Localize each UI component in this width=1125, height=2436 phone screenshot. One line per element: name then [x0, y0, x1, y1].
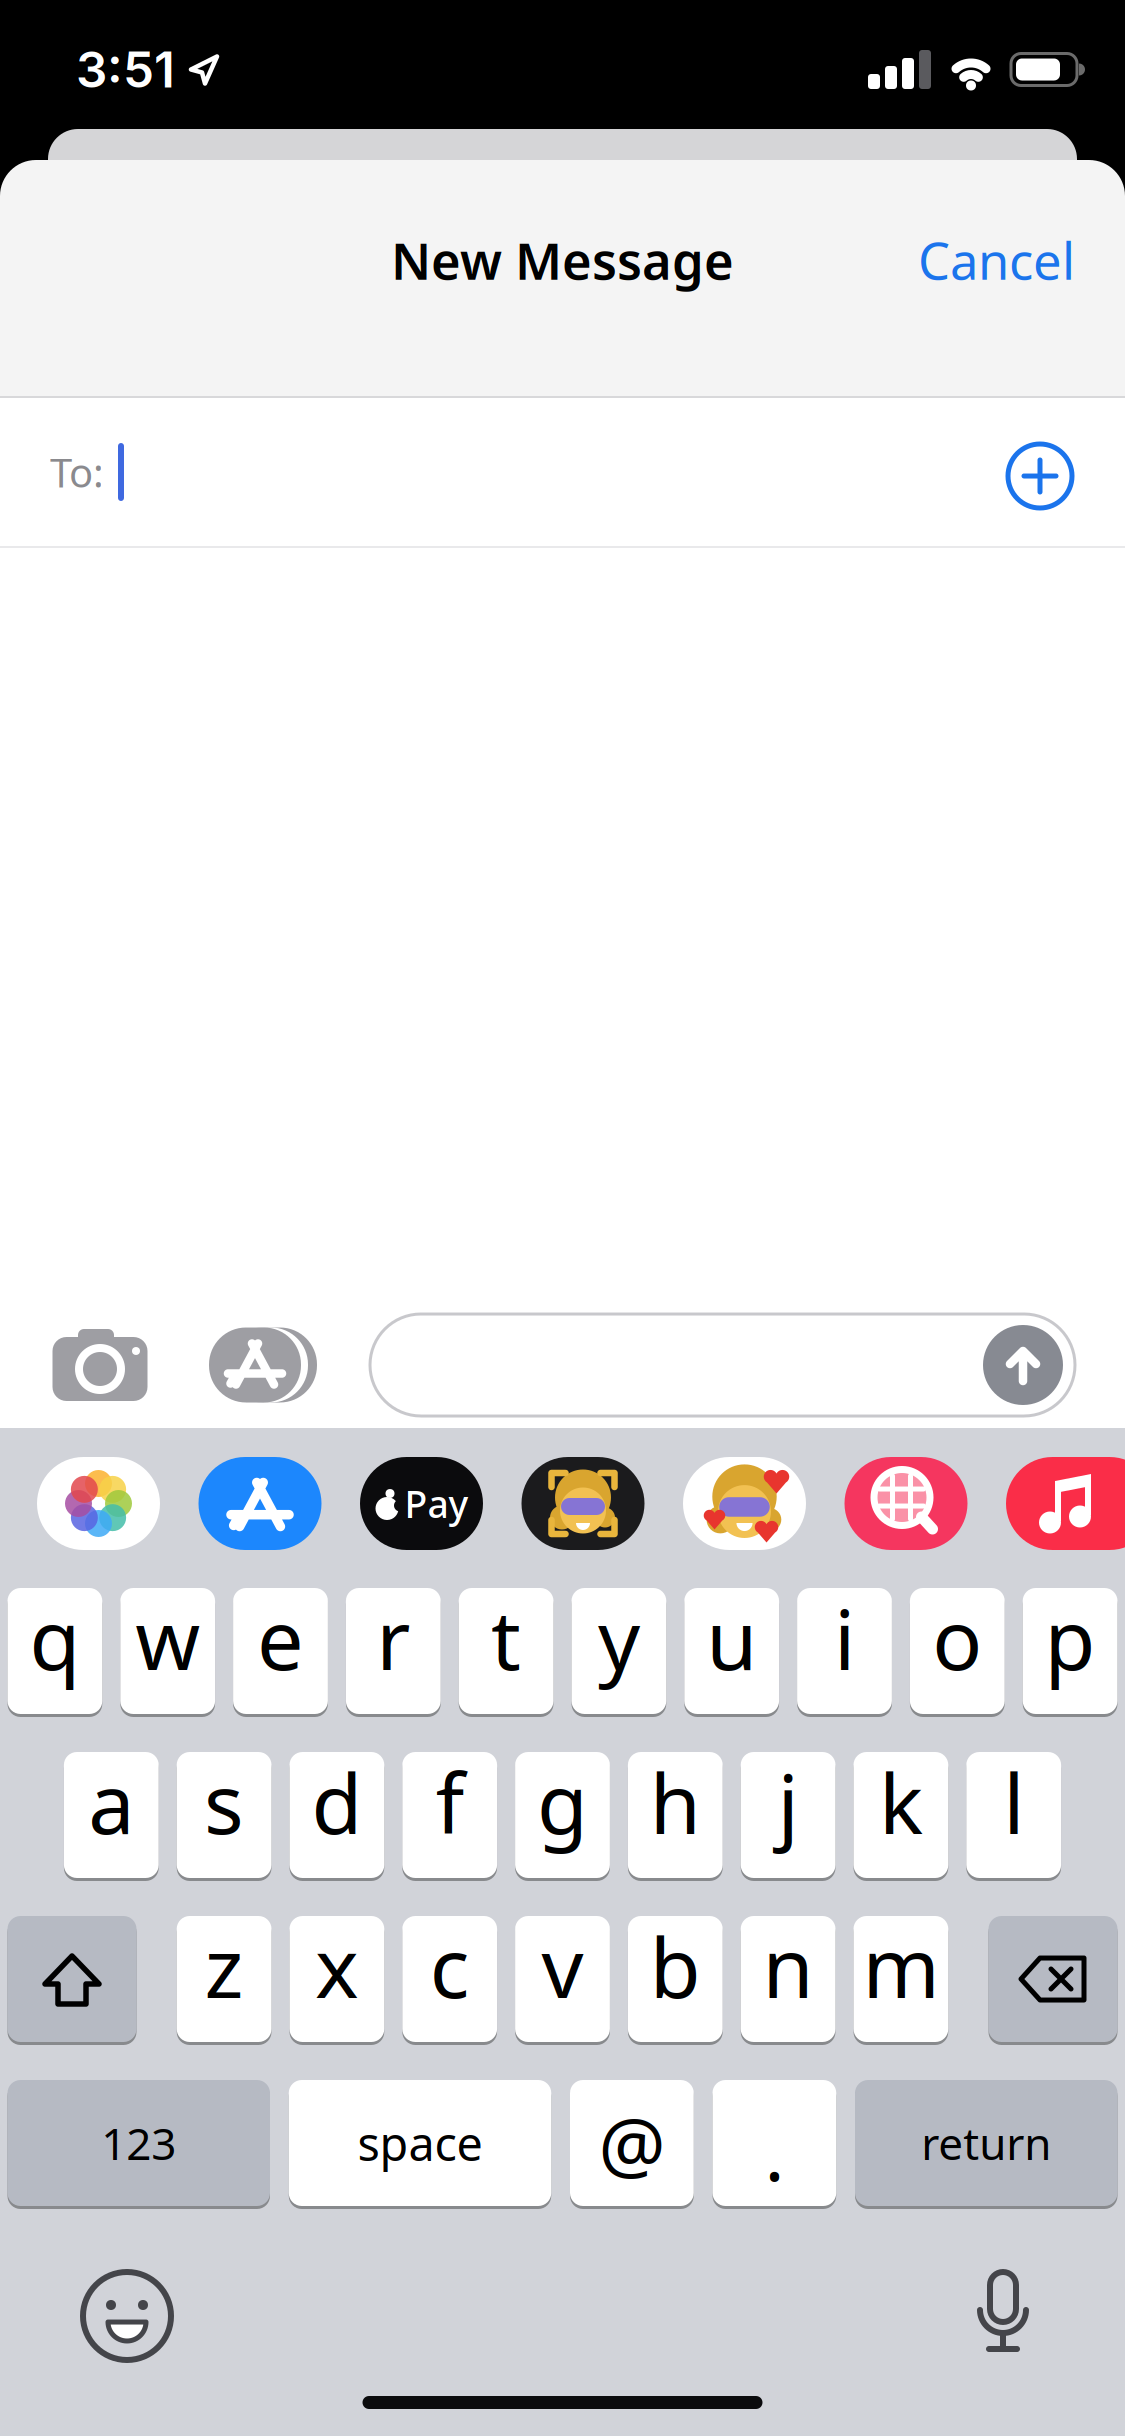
button[interactable]: u [684, 1588, 779, 1714]
button[interactable]: z [177, 1916, 271, 2042]
button[interactable]: Camera [52, 1317, 148, 1413]
button[interactable]: r [346, 1588, 441, 1714]
button[interactable]: @ [570, 2080, 694, 2206]
button[interactable]: Images [844, 1457, 967, 1550]
button[interactable]: Shift [7, 1916, 136, 2042]
button[interactable]: Memoji Stickers [683, 1457, 806, 1550]
staticText: space [357, 2112, 482, 2174]
staticText: t [491, 1583, 521, 1693]
button[interactable]: Dictation [969, 2271, 1037, 2361]
button[interactable]: Emoji [83, 2272, 171, 2360]
button[interactable]: k [853, 1752, 948, 1878]
button[interactable]: App Store [198, 1457, 321, 1550]
staticText: k [879, 1747, 923, 1857]
button[interactable]: o [910, 1588, 1005, 1714]
staticText: To: [50, 445, 104, 498]
button[interactable]: return [855, 2080, 1117, 2206]
staticText: c [430, 1911, 470, 2021]
staticText: e [257, 1583, 304, 1693]
staticText: 3:51 [76, 40, 175, 99]
button[interactable]: j [741, 1752, 835, 1878]
staticText: m [862, 1911, 939, 2021]
button[interactable]: s [177, 1752, 271, 1878]
button[interactable]: q [7, 1588, 102, 1714]
staticText: s [204, 1747, 244, 1857]
staticText: x [315, 1911, 359, 2021]
button[interactable]: . [712, 2080, 836, 2206]
staticText: New Message [391, 226, 734, 294]
staticText: @ [598, 2093, 665, 2193]
staticText: j [778, 1747, 799, 1857]
staticText: r [376, 1583, 410, 1693]
staticText: Pay [404, 1479, 468, 1528]
staticText: a [88, 1747, 134, 1857]
button[interactable]: c [402, 1916, 497, 2042]
button[interactable]: w [120, 1588, 215, 1714]
staticText: z [205, 1911, 244, 2021]
button[interactable]: n [741, 1916, 835, 2042]
staticText: return [921, 2114, 1051, 2172]
button[interactable]: Add Contact [1008, 440, 1072, 504]
button[interactable]: m [853, 1916, 948, 2042]
button[interactable]: Apps [206, 1317, 320, 1413]
button[interactable]: 123 [7, 2080, 270, 2206]
staticText: i [834, 1583, 855, 1693]
button[interactable]: a [64, 1752, 159, 1878]
staticText: . [764, 2102, 784, 2202]
button[interactable]: d [289, 1752, 384, 1878]
button[interactable]: g [515, 1752, 610, 1878]
staticText: v [541, 1911, 583, 2021]
button[interactable]: y [571, 1588, 666, 1714]
button[interactable]: e [233, 1588, 328, 1714]
staticText: u [706, 1583, 757, 1693]
button[interactable]: Apple Pay [360, 1457, 483, 1550]
button[interactable]: l [966, 1752, 1061, 1878]
button[interactable]: b [628, 1916, 723, 2042]
button[interactable]: space [289, 2080, 551, 2206]
staticText: 123 [101, 2114, 176, 2172]
button[interactable]: v [515, 1916, 610, 2042]
staticText: n [763, 1911, 814, 2021]
staticText: Cancel [918, 226, 1075, 294]
staticText: y [598, 1583, 640, 1693]
button[interactable]: Photos [37, 1457, 160, 1550]
staticText: p [1045, 1583, 1096, 1693]
button[interactable]: Cancel [918, 231, 1075, 299]
button[interactable]: f [402, 1752, 497, 1878]
staticText: q [29, 1583, 80, 1693]
button[interactable]: Send [983, 1325, 1063, 1405]
staticText: w [135, 1583, 200, 1693]
staticText: h [650, 1747, 701, 1857]
button[interactable]: h [628, 1752, 723, 1878]
button[interactable]: Music [1006, 1457, 1125, 1550]
staticText: b [650, 1911, 701, 2021]
staticText: o [932, 1583, 982, 1693]
staticText: d [311, 1747, 362, 1857]
button[interactable]: i [797, 1588, 892, 1714]
button[interactable]: x [289, 1916, 384, 2042]
staticText: g [537, 1747, 588, 1857]
button[interactable]: Delete [988, 1916, 1117, 2042]
button[interactable]: t [459, 1588, 553, 1714]
staticText: l [1003, 1747, 1024, 1857]
button[interactable]: Memoji [521, 1457, 644, 1550]
button[interactable]: p [1023, 1588, 1117, 1714]
staticText: f [436, 1747, 464, 1857]
